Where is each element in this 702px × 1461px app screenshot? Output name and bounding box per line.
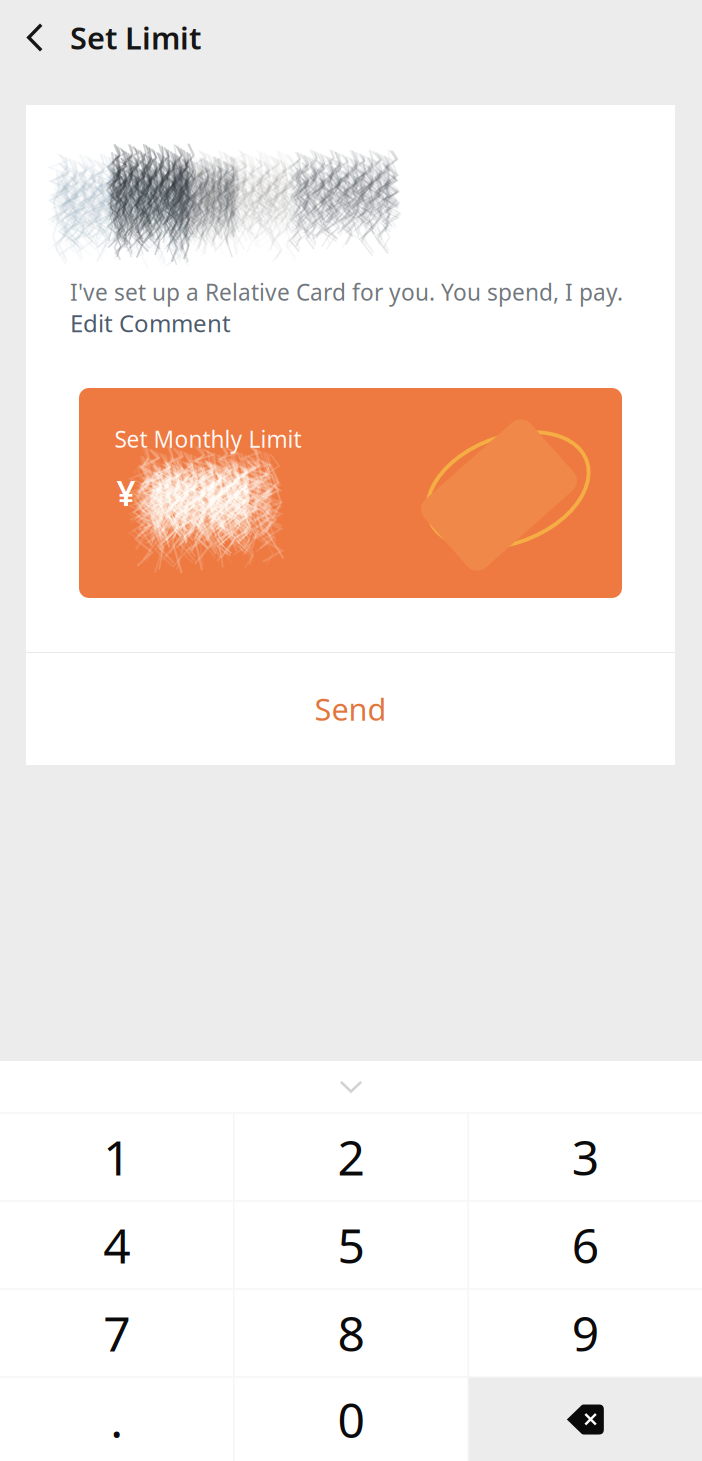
- button[interactable]: Edit Comment: [26, 307, 231, 341]
- staticText: Send: [314, 689, 386, 729]
- button[interactable]: 0: [234, 1377, 468, 1461]
- button[interactable]: 6: [469, 1201, 702, 1288]
- button[interactable]: Delete: [469, 1377, 702, 1461]
- staticText: 0: [337, 1388, 364, 1451]
- button[interactable]: 2: [234, 1113, 468, 1200]
- staticText: .: [110, 1388, 123, 1451]
- staticText: Set Limit: [70, 17, 201, 58]
- button[interactable]: 7: [0, 1289, 233, 1376]
- button[interactable]: 9: [469, 1289, 702, 1376]
- staticText: 1: [103, 1125, 130, 1189]
- button[interactable]: Back: [0, 0, 70, 75]
- button[interactable]: 5: [234, 1201, 468, 1288]
- staticText: 9: [572, 1301, 599, 1365]
- staticText: Set Monthly Limit: [114, 424, 301, 454]
- staticText: 8: [337, 1301, 364, 1365]
- button[interactable]: 3: [469, 1113, 702, 1200]
- button[interactable]: 1: [0, 1113, 233, 1200]
- button[interactable]: 4: [0, 1201, 233, 1288]
- button[interactable]: Send: [26, 653, 675, 765]
- button[interactable]: 8: [234, 1289, 468, 1376]
- staticText: 6: [572, 1213, 599, 1277]
- staticText: ¥: [116, 471, 135, 515]
- staticText: 2: [337, 1125, 364, 1189]
- staticText: Edit Comment: [70, 307, 231, 339]
- button[interactable]: Hide keyboard: [0, 1060, 702, 1112]
- staticText: I've set up a Relative Card for you. You…: [70, 277, 623, 307]
- staticText: 5: [337, 1213, 364, 1277]
- button[interactable]: .: [0, 1377, 233, 1461]
- staticText: 7: [103, 1301, 130, 1365]
- staticText: 3: [572, 1125, 599, 1189]
- staticText: 4: [103, 1213, 130, 1277]
